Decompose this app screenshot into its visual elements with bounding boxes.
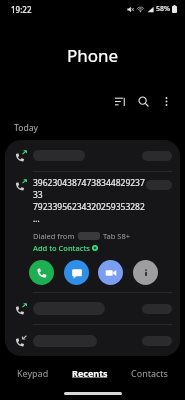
button[interactable]: More options — [155, 90, 177, 112]
button[interactable]: Recents — [66, 363, 114, 383]
staticText: 3962304387473834482923733 — [33, 177, 146, 201]
staticText: Contacts — [131, 367, 168, 379]
staticText: Today — [14, 122, 38, 134]
staticText: Phone — [67, 44, 119, 67]
button[interactable] — [5, 293, 180, 324]
staticText: Add to Contacts — [33, 243, 90, 253]
staticText: 58% — [156, 4, 170, 14]
button[interactable]: Sort — [109, 90, 131, 112]
staticText: Keypad — [17, 367, 49, 379]
button[interactable] — [5, 140, 180, 171]
button[interactable]: Contacts — [125, 363, 174, 383]
button[interactable]: Message — [64, 260, 89, 285]
button[interactable]: Add to Contacts — [33, 243, 98, 253]
button[interactable]: Search — [132, 90, 154, 112]
staticText: Recents — [72, 367, 108, 379]
button[interactable]: Keypad — [11, 363, 55, 383]
staticText: Dialed from — [33, 231, 75, 241]
button[interactable] — [5, 325, 180, 356]
button[interactable]: Call — [29, 260, 54, 285]
staticText: 79233956234320259353282… — [33, 201, 146, 225]
staticText: 19:22 — [11, 4, 32, 15]
button[interactable]: 3962304387473834482923733 — [5, 172, 180, 292]
button[interactable]: Video call — [98, 260, 123, 285]
staticText: Tab S8+ — [103, 231, 131, 241]
button[interactable]: Details — [133, 260, 158, 285]
